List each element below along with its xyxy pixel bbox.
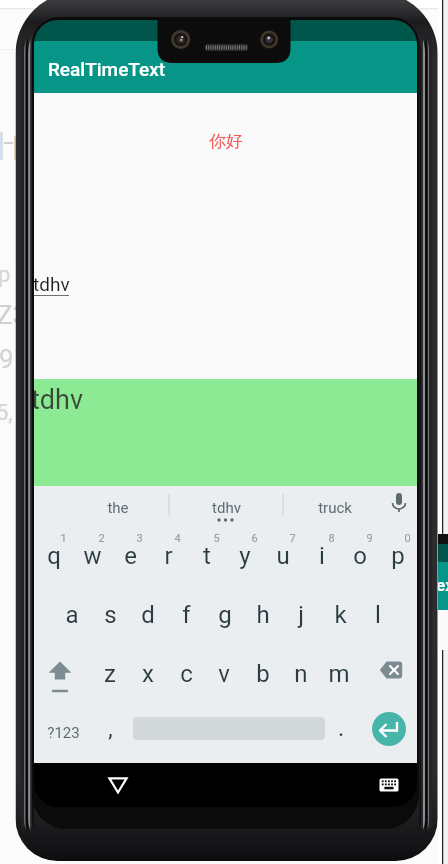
button[interactable]: t	[185, 540, 229, 572]
staticText: g	[218, 601, 232, 629]
button[interactable]: .	[319, 712, 363, 744]
staticText: 6	[251, 532, 258, 545]
button[interactable]: k	[318, 599, 362, 631]
button[interactable]: 2	[79, 522, 123, 554]
staticText: m	[328, 660, 350, 688]
staticText: 2	[98, 532, 105, 545]
staticText: q	[47, 542, 61, 570]
staticText: l	[375, 601, 381, 629]
staticText: c	[180, 660, 193, 688]
button[interactable]: 9	[347, 522, 391, 554]
staticText: k	[334, 601, 347, 629]
button[interactable]: 4	[155, 522, 199, 554]
button[interactable]: ?123	[41, 717, 85, 749]
staticText: 0	[404, 532, 411, 545]
staticText: w	[83, 542, 102, 570]
staticText: r	[164, 542, 173, 570]
button[interactable]: i	[300, 540, 344, 572]
staticText: v	[218, 660, 230, 688]
button[interactable]: 5	[194, 522, 238, 554]
staticText: 你好	[209, 131, 243, 152]
staticText: .	[338, 717, 344, 740]
staticText: ?123	[47, 724, 80, 742]
staticText: h	[256, 601, 270, 629]
staticText: 3	[136, 532, 143, 545]
staticText: d	[141, 601, 155, 629]
button[interactable]: Back	[98, 765, 138, 805]
staticText: 7	[289, 532, 296, 545]
staticText: 9	[366, 532, 373, 545]
button[interactable]: tdhv	[204, 492, 248, 524]
button[interactable]: b	[241, 658, 285, 690]
staticText: ,	[108, 717, 113, 740]
button[interactable]: j	[279, 599, 323, 631]
button[interactable]: s	[88, 599, 132, 631]
button[interactable]: ,	[88, 712, 132, 744]
staticText: n	[294, 660, 308, 688]
button[interactable]: f	[164, 599, 208, 631]
button[interactable]: 8	[309, 522, 353, 554]
button[interactable]: the	[96, 492, 140, 524]
staticText: y	[239, 542, 251, 570]
button[interactable]: Shift	[38, 652, 82, 700]
button[interactable]: l	[356, 599, 400, 631]
button[interactable]: 7	[270, 522, 314, 554]
button[interactable]: n	[279, 658, 323, 690]
staticText: p	[391, 542, 405, 570]
button[interactable]: 6	[232, 522, 276, 554]
staticText: 5	[213, 532, 220, 545]
staticText: j	[298, 601, 304, 629]
staticText: the	[107, 499, 129, 517]
staticText: z	[104, 660, 116, 688]
button[interactable]: o	[338, 540, 382, 572]
staticText: e	[124, 542, 137, 570]
button[interactable]: 0	[385, 522, 417, 554]
button[interactable]: r	[146, 540, 190, 572]
staticText: 9	[0, 344, 14, 374]
staticText: p	[0, 262, 11, 288]
staticText: a	[65, 601, 79, 629]
button[interactable]: e	[108, 540, 152, 572]
staticText: 8	[328, 532, 335, 545]
button[interactable]: w	[70, 540, 114, 572]
button[interactable]: Backspace	[369, 648, 413, 692]
button[interactable]: Voice input	[383, 487, 415, 519]
button[interactable]: p	[376, 540, 417, 572]
staticText: Z3	[0, 300, 28, 330]
staticText: ex	[436, 575, 448, 595]
button[interactable]: x	[126, 658, 170, 690]
button[interactable]: y	[223, 540, 267, 572]
button[interactable]: Enter	[372, 712, 406, 746]
staticText: u	[276, 542, 290, 570]
button[interactable]: q	[34, 540, 76, 572]
staticText: o	[353, 542, 367, 570]
staticText: 1	[60, 532, 67, 545]
button[interactable]: m	[317, 658, 361, 690]
staticText: 5, 0	[0, 400, 31, 426]
button[interactable]: d	[126, 599, 170, 631]
staticText: b	[256, 660, 270, 688]
button[interactable]: g	[203, 599, 247, 631]
staticText: i	[319, 542, 325, 570]
staticText: s	[104, 601, 117, 629]
button[interactable]: h	[241, 599, 285, 631]
staticText: f	[182, 601, 191, 629]
staticText: tdhv	[212, 499, 241, 517]
staticText: t	[203, 542, 211, 570]
button[interactable]: truck	[313, 492, 357, 524]
staticText: truck	[318, 499, 352, 517]
button[interactable]: 1	[41, 522, 85, 554]
button[interactable]: u	[261, 540, 305, 572]
staticText: x	[142, 660, 154, 688]
button[interactable]: c	[164, 658, 208, 690]
button[interactable]: 3	[117, 522, 161, 554]
staticText: tdhv	[34, 273, 70, 295]
button[interactable]: z	[88, 658, 132, 690]
staticText: tdhv	[34, 384, 84, 416]
button[interactable]: a	[50, 599, 94, 631]
staticText: RealTimeText	[48, 58, 166, 80]
button[interactable]: Switch keyboard	[369, 765, 409, 805]
button[interactable]: v	[202, 658, 246, 690]
